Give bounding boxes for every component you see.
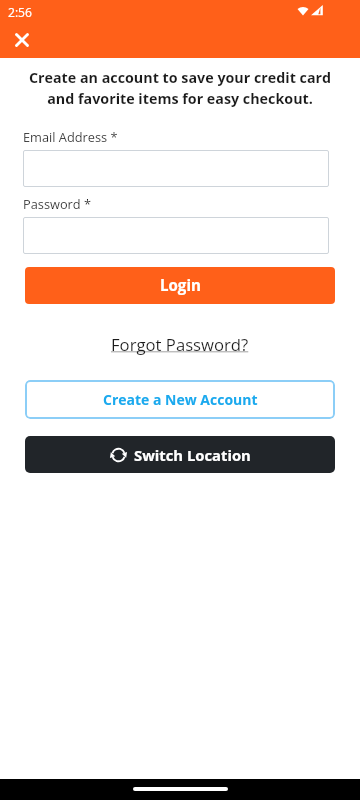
staticText: Login: [160, 275, 201, 296]
button[interactable]: [23, 217, 329, 254]
button[interactable]: Close: [6, 24, 38, 56]
button[interactable]: Create a New Account: [25, 380, 335, 419]
button[interactable]: [23, 150, 329, 187]
button[interactable]: Forgot Password?: [111, 333, 249, 356]
staticText: 2:56: [8, 4, 32, 20]
staticText: Email Address *: [23, 128, 118, 145]
staticText: Switch Location: [134, 445, 251, 465]
staticText: Password *: [23, 195, 92, 212]
staticText: Create an account to save your credit ca…: [24, 68, 336, 108]
button[interactable]: Sync: [25, 436, 335, 473]
staticText: Create a New Account: [103, 390, 258, 409]
button[interactable]: Login: [25, 267, 335, 304]
other: Sync: [110, 446, 127, 464]
